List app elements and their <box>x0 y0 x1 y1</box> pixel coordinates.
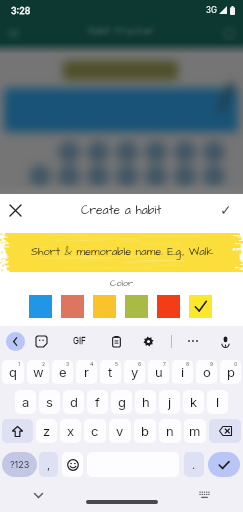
button[interactable]: Emoji <box>62 452 83 477</box>
button[interactable]: Back <box>6 332 25 351</box>
button[interactable]: Comma <box>39 452 58 477</box>
button[interactable]: y <box>124 360 145 384</box>
staticText: 2 <box>42 361 46 367</box>
staticText: 1 <box>18 361 21 367</box>
staticText: d <box>70 394 78 410</box>
button[interactable]: Change keyboard <box>194 485 214 505</box>
staticText: m <box>189 423 201 439</box>
staticText: 5 <box>115 361 118 367</box>
staticText: 8 <box>186 361 190 367</box>
button[interactable]: c <box>84 419 106 443</box>
staticText: 3G <box>206 5 217 15</box>
button[interactable]: x <box>60 419 81 443</box>
staticText: n <box>166 423 174 439</box>
button[interactable]: Stickers <box>31 331 51 351</box>
button[interactable]: Close <box>2 197 28 223</box>
button[interactable]: o <box>196 360 217 384</box>
staticText: i <box>181 364 185 380</box>
button[interactable]: k <box>183 390 204 414</box>
staticText: k <box>190 394 198 410</box>
button[interactable]: u <box>148 360 169 384</box>
button[interactable]: ?123 <box>2 452 37 477</box>
staticText: o <box>203 364 211 380</box>
button[interactable]: n <box>159 419 181 443</box>
staticText: . <box>192 458 196 471</box>
button[interactable]: Hide keyboard <box>28 485 48 505</box>
staticText: x <box>67 423 75 439</box>
button[interactable]: h <box>135 390 156 414</box>
button[interactable]: Clipboard <box>106 331 126 351</box>
button[interactable]: Colour option 6 <box>189 295 212 318</box>
button[interactable]: w <box>27 360 49 384</box>
button[interactable]: q <box>2 360 24 384</box>
button[interactable]: r <box>76 360 97 384</box>
button[interactable]: z <box>36 419 57 443</box>
staticText: z <box>43 423 51 439</box>
staticText: f <box>95 394 100 410</box>
button[interactable]: Enter <box>208 452 240 477</box>
button[interactable]: a <box>15 390 36 414</box>
button[interactable]: f <box>87 390 108 414</box>
button[interactable]: More options <box>183 331 203 351</box>
button[interactable]: d <box>63 390 84 414</box>
staticText: 6 <box>138 361 142 367</box>
button[interactable]: l <box>207 390 228 414</box>
button[interactable]: g <box>111 390 132 414</box>
button[interactable]: Voice input <box>215 331 235 351</box>
staticText: p <box>227 364 235 380</box>
button[interactable]: Backspace <box>209 419 241 443</box>
staticText: Short & memorable name. E.g., Walk <box>31 244 214 259</box>
staticText: t <box>108 364 113 380</box>
button[interactable]: v <box>109 419 131 443</box>
staticText: g <box>118 394 126 410</box>
button[interactable]: e <box>52 360 73 384</box>
staticText: q <box>9 364 17 380</box>
staticText: h <box>142 394 150 410</box>
staticText: GIF <box>73 336 86 346</box>
button[interactable]: i <box>172 360 193 384</box>
staticText: Create a habit <box>81 202 162 219</box>
staticText: v <box>116 423 124 439</box>
staticText: Habit Tracker <box>88 24 155 38</box>
button[interactable]: Short & memorable name. E.g., Walk <box>0 233 243 270</box>
button[interactable]: Save habit <box>213 197 239 223</box>
staticText: ?123 <box>10 459 30 470</box>
button[interactable]: p <box>220 360 241 384</box>
staticText: y <box>131 364 139 380</box>
button[interactable]: b <box>134 419 156 443</box>
staticText: b <box>141 423 149 439</box>
staticText: r <box>84 364 89 380</box>
button[interactable]: t <box>100 360 121 384</box>
button[interactable]: Period <box>184 452 204 477</box>
button[interactable]: s <box>39 390 60 414</box>
staticText: c <box>91 423 99 439</box>
staticText: u <box>155 364 163 380</box>
staticText: ✓ <box>220 202 232 218</box>
staticText: s <box>46 394 53 410</box>
button[interactable]: Settings <box>138 331 158 351</box>
button[interactable]: GIF <box>67 329 91 353</box>
staticText: a <box>22 394 30 410</box>
staticText: 4 <box>90 361 94 367</box>
staticText: 9 <box>210 361 214 367</box>
staticText: l <box>216 394 220 410</box>
staticText: Color <box>0 277 243 290</box>
staticText: e <box>59 364 67 380</box>
button[interactable]: m <box>184 419 206 443</box>
staticText: , <box>47 458 51 471</box>
staticText: 7 <box>163 361 166 367</box>
button[interactable]: j <box>159 390 180 414</box>
staticText: 0 <box>234 361 238 367</box>
staticText: j <box>168 394 172 410</box>
staticText: w <box>33 364 44 380</box>
button[interactable]: Shift <box>2 419 33 443</box>
staticText: 3 <box>66 361 70 367</box>
staticText: 3:28 <box>11 5 31 16</box>
